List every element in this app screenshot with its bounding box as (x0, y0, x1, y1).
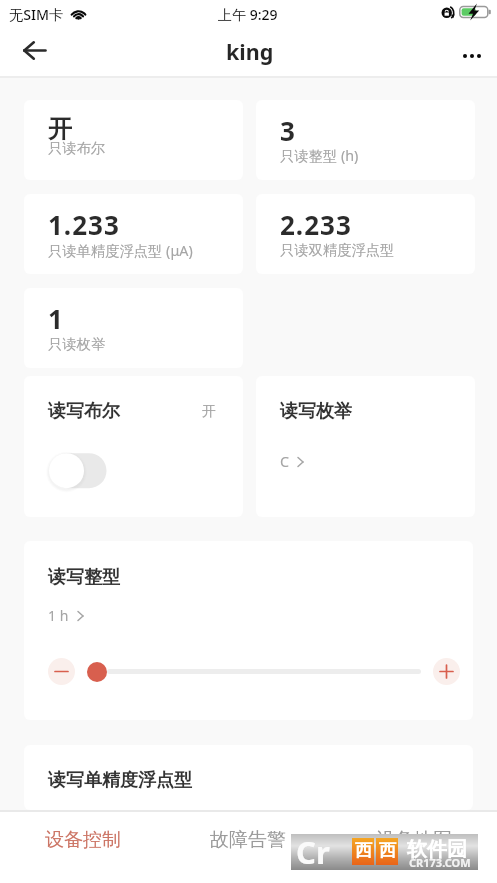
staticText: 无SIM卡 (9, 5, 64, 24)
button[interactable]: Toggle read-write boolean (48, 450, 110, 490)
staticText: 开 (202, 402, 217, 420)
button[interactable]: 1 h (48, 606, 84, 625)
staticText: 只读单精度浮点型 (μA) (48, 241, 193, 261)
staticText: Cr (296, 831, 330, 873)
button[interactable]: Decrease (48, 658, 75, 685)
staticText: 读写整型 (48, 566, 120, 589)
button[interactable]: 1 (24, 288, 243, 368)
button[interactable]: 2.233 (256, 194, 475, 274)
staticText: 上午 9:29 (218, 5, 278, 24)
button[interactable]: 读写布尔 (24, 376, 243, 517)
staticText: 只读双精度浮点型 (280, 241, 395, 259)
staticText: C (280, 452, 290, 471)
staticText: 3 (280, 113, 296, 148)
button[interactable]: 1.233 (24, 194, 243, 274)
staticText: 只读布尔 (48, 139, 106, 157)
button[interactable]: C (280, 452, 304, 471)
button[interactable]: 设备控制 (0, 810, 165, 883)
staticText: 读写枚举 (280, 400, 352, 423)
staticText: 设备控制 (45, 828, 121, 852)
button[interactable]: 3 (256, 100, 475, 180)
staticText: 1.233 (48, 207, 120, 242)
button[interactable]: 开 (24, 100, 243, 180)
staticText: 1 (48, 301, 64, 336)
button[interactable]: 读写枚举 (256, 376, 475, 517)
button[interactable]: Back (11, 27, 57, 73)
button[interactable]: More options (443, 30, 489, 76)
staticText: 西 (355, 840, 372, 861)
staticText: 2.233 (280, 207, 352, 242)
button[interactable]: Increase (433, 658, 460, 685)
staticText: 1 h (48, 606, 69, 625)
staticText: 读写布尔 (48, 400, 120, 423)
button[interactable]: 设备地图 (331, 810, 497, 883)
staticText: king (226, 37, 274, 66)
staticText: 故障告警 (210, 828, 286, 852)
staticText: CR173.COM (409, 855, 471, 870)
staticText: 只读整型 (h) (280, 146, 359, 166)
staticText: 只读枚举 (48, 335, 106, 353)
staticText: 读写单精度浮点型 (48, 769, 192, 792)
staticText: 设备地图 (376, 828, 452, 852)
staticText: 软件园 (407, 837, 467, 862)
button[interactable]: 故障告警 (165, 810, 331, 883)
staticText: 西 (379, 840, 396, 861)
staticText: 开 (48, 114, 72, 144)
